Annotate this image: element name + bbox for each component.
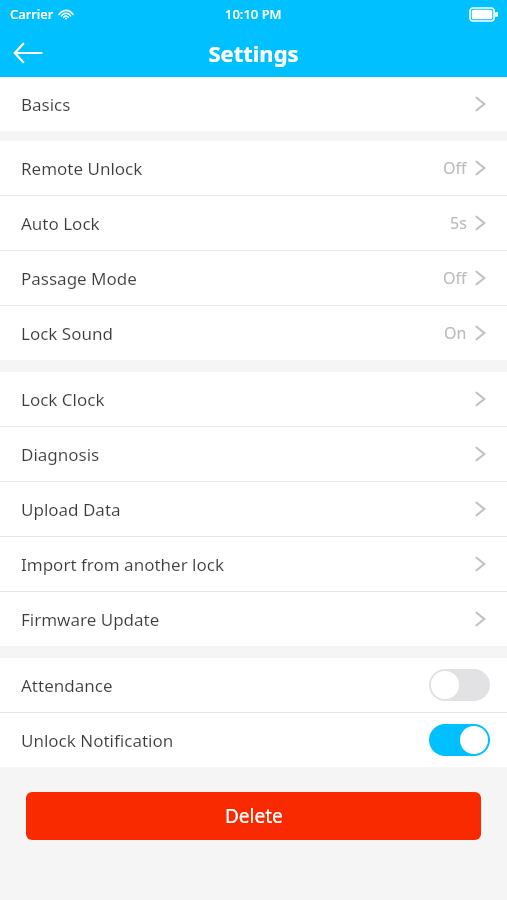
staticText: Off: [443, 157, 467, 179]
staticText: Unlock Notification: [21, 729, 174, 752]
staticText: 5s: [450, 212, 467, 234]
button[interactable]: Delete: [26, 792, 481, 840]
button[interactable]: Remote Unlock: [0, 141, 507, 195]
button[interactable]: Lock Clock: [0, 372, 507, 426]
button[interactable]: Basics: [0, 77, 507, 131]
staticText: Lock Clock: [21, 388, 105, 411]
staticText: Diagnosis: [21, 443, 100, 466]
button[interactable]: Passage Mode: [0, 251, 507, 305]
button[interactable]: Firmware Update: [0, 592, 507, 646]
staticText: Carrier: [10, 5, 54, 23]
button[interactable]: Auto Lock: [0, 196, 507, 250]
staticText: On: [444, 322, 467, 344]
staticText: Upload Data: [21, 498, 121, 521]
button[interactable]: Import from another lock: [0, 537, 507, 591]
staticText: Delete: [225, 803, 283, 829]
button[interactable]: Toggle off: [429, 669, 490, 701]
button[interactable]: Unlock Notification: [0, 713, 507, 767]
button[interactable]: Back: [0, 28, 56, 77]
button[interactable]: Lock Sound: [0, 306, 507, 360]
staticText: Import from another lock: [21, 553, 225, 576]
staticText: Auto Lock: [21, 212, 100, 235]
button[interactable]: Toggle on: [429, 724, 490, 756]
staticText: Settings: [208, 38, 299, 68]
staticText: Lock Sound: [21, 322, 113, 345]
button[interactable]: Diagnosis: [0, 427, 507, 481]
staticText: Attendance: [21, 674, 113, 697]
button[interactable]: Attendance: [0, 658, 507, 712]
staticText: Passage Mode: [21, 267, 137, 290]
button[interactable]: Upload Data: [0, 482, 507, 536]
staticText: 10:10 PM: [225, 5, 282, 23]
staticText: Off: [443, 267, 467, 289]
staticText: Basics: [21, 93, 71, 116]
staticText: Remote Unlock: [21, 157, 143, 180]
staticText: Firmware Update: [21, 608, 160, 631]
